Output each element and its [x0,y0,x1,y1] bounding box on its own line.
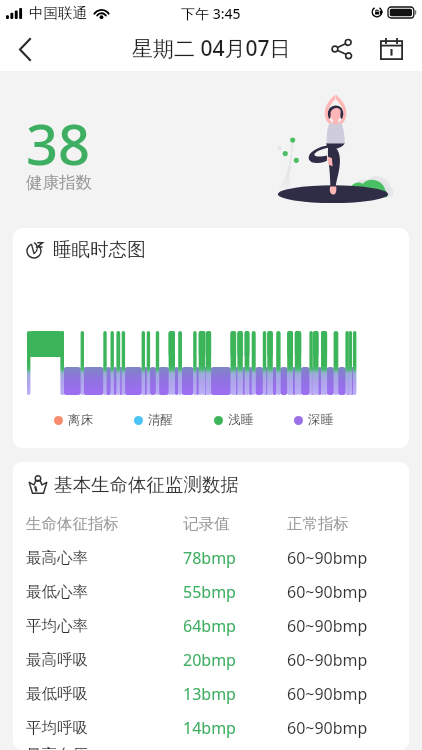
staticText: 最低心率 [26,582,88,602]
staticText: 60~90bmp [287,547,368,569]
staticText: 平均心率 [26,616,88,636]
staticText: 最高呼吸 [26,650,88,670]
staticText: 13bmp [183,683,236,705]
staticText: 最低呼吸 [26,684,88,704]
staticText: 离床 [68,412,93,428]
staticText: 中国联通 [29,4,87,22]
staticText: 38 [26,105,91,181]
staticText: 生命体征指标 [26,514,119,534]
staticText: 深睡 [308,412,333,428]
button[interactable]: Share [320,27,364,71]
button[interactable]: Back [3,27,47,71]
staticText: 下午 3:45 [181,4,241,23]
staticText: 最高血压 [26,745,88,750]
staticText: 55bmp [183,581,236,603]
staticText: 基本生命体征监测数据 [54,473,239,496]
staticText: 正常指标 [287,514,349,534]
staticText: 14bmp [183,717,236,739]
staticText: 78bmp [183,547,236,569]
staticText: 60~90bmp [287,717,368,739]
button[interactable]: Calendar [369,27,413,71]
staticText: 64bmp [183,615,236,637]
staticText: 60~90bmp [287,581,368,603]
staticText: 平均呼吸 [26,718,88,738]
button[interactable]: 睡眠时态图 [13,228,409,448]
staticText: 睡眠时态图 [53,238,146,261]
staticText: 60~90bmp [287,683,368,705]
staticText: 20bmp [183,649,236,671]
staticText: 记录值 [183,514,230,534]
staticText: 最高心率 [26,548,88,568]
staticText: 星期二 04月07日 [132,34,291,63]
staticText: 清醒 [148,412,173,428]
staticText: 浅睡 [228,412,253,428]
staticText: 健康指数 [26,172,92,193]
staticText: 60~90bmp [287,615,368,637]
staticText: 60~90bmp [287,649,368,671]
